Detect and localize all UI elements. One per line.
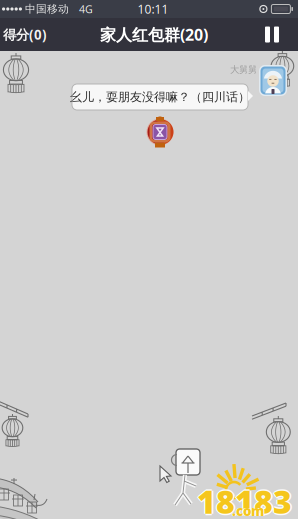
staticText: .com [233, 502, 265, 519]
staticText: 18183 [195, 480, 290, 519]
staticText: .com [232, 502, 264, 519]
staticText: 18183 [197, 478, 292, 519]
staticText: 幺儿，耍朋友没得嘛？（四川话） [70, 90, 250, 104]
staticText: 大舅舅 [230, 64, 257, 75]
staticText: 家人红包群(20) [100, 24, 208, 45]
staticText: 18183 [198, 480, 293, 519]
staticText: 18183 [197, 481, 292, 519]
staticText: 18183 [197, 480, 292, 519]
staticText: 得分(0) [3, 26, 47, 43]
staticText: 10:11 [137, 1, 168, 17]
button[interactable]: Pause [255, 18, 289, 50]
staticText: 中国移动 [25, 2, 69, 15]
staticText: 4G [79, 2, 93, 16]
staticText: .com [231, 502, 263, 519]
